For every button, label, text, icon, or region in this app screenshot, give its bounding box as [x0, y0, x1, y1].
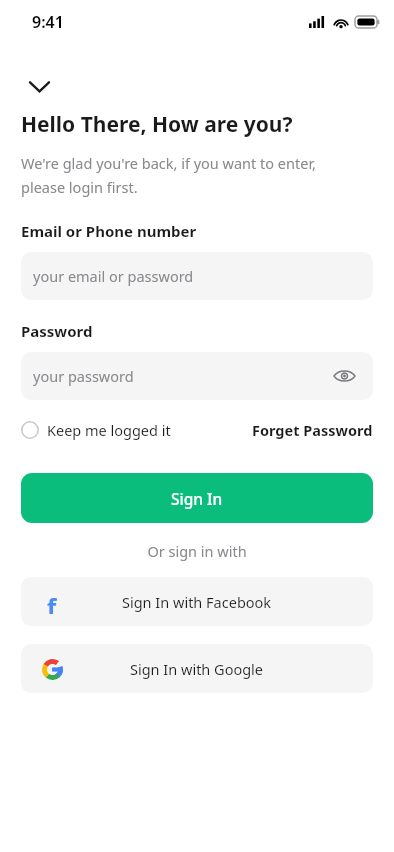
button[interactable]: f [21, 577, 373, 626]
button[interactable]: Sign In with Google [21, 644, 373, 693]
staticText: Keep me logged it [47, 420, 171, 440]
staticText: f [47, 590, 57, 614]
staticText: We're glad you're back, if you want to e… [21, 153, 316, 197]
staticText: your email or password [33, 266, 194, 286]
button[interactable]: your email or password [21, 252, 373, 300]
button[interactable]: Keep me logged it [21, 420, 175, 440]
staticText: Sign In [171, 488, 223, 509]
staticText: Sign In with Google [130, 659, 264, 679]
staticText: Password [21, 321, 93, 341]
staticText: 9:41 [32, 11, 64, 33]
staticText: Forget Password [252, 420, 373, 440]
button[interactable]: Forget Password [252, 420, 373, 440]
button[interactable]: Collapse [21, 68, 57, 104]
button[interactable]: Sign In [21, 473, 373, 523]
staticText: Or sign in with [0, 541, 394, 561]
staticText: your password [33, 366, 134, 386]
button[interactable]: your password [21, 352, 373, 400]
button[interactable]: Show password [332, 364, 356, 388]
staticText: Email or Phone number [21, 221, 197, 241]
staticText: Hello There, How are you? [21, 110, 293, 139]
staticText: Sign In with Facebook [122, 592, 272, 612]
